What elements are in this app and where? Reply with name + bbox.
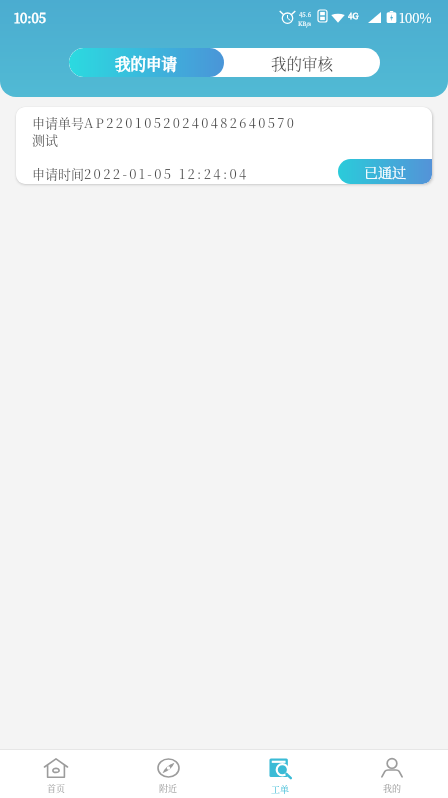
button[interactable]: 我的申请	[69, 48, 224, 77]
button[interactable]: Profile	[336, 750, 448, 798]
staticText: 我的	[383, 782, 402, 795]
staticText: 首页	[47, 782, 66, 795]
staticText: 我的审核	[271, 52, 334, 74]
staticText: 测试	[32, 130, 59, 149]
staticText: 100%	[399, 8, 432, 27]
button[interactable]: Work orders	[224, 750, 336, 798]
staticText: 45.6	[299, 10, 311, 19]
staticText: 10:05	[14, 8, 47, 27]
other: Battery 100 percent	[386, 11, 397, 23]
other: Work orders	[269, 758, 292, 779]
staticText: 申请单号AP22010520240482640570	[32, 113, 297, 132]
button[interactable]: 已通过	[338, 159, 432, 184]
other: Signal strength	[368, 12, 381, 23]
staticText: 我的申请	[115, 52, 178, 74]
staticText: 附近	[159, 782, 178, 795]
staticText: KB/s	[298, 19, 312, 28]
other: Alarm	[281, 11, 294, 23]
other: Home	[44, 758, 68, 778]
other: Nearby	[157, 758, 180, 778]
button[interactable]: 申请单号AP22010520240482640570	[16, 107, 432, 184]
other: Wi-Fi	[331, 12, 345, 23]
other: HD calling	[318, 10, 327, 22]
other: Profile	[381, 758, 403, 778]
staticText: 申请时间2022-01-05 12:24:04	[32, 164, 249, 183]
staticText: 已通过	[364, 162, 406, 182]
button[interactable]: Nearby	[112, 750, 224, 798]
staticText: 4G	[348, 10, 359, 21]
button[interactable]: 我的审核	[224, 48, 380, 77]
staticText: 工单	[271, 783, 290, 796]
button[interactable]: Home	[0, 750, 112, 798]
